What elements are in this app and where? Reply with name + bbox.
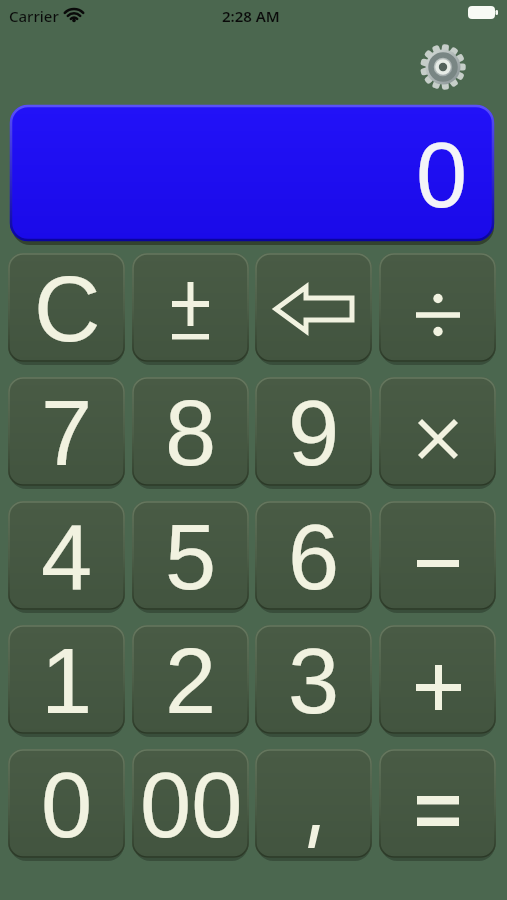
staticText: Carrier — [9, 6, 59, 26]
button[interactable]: 6 — [255, 501, 373, 613]
staticText: 0 — [416, 124, 468, 227]
staticText: 4 — [41, 506, 93, 609]
staticText: 0 — [41, 754, 93, 857]
button[interactable] — [255, 749, 373, 861]
button[interactable]: 7 — [8, 377, 126, 489]
staticText: 1 — [41, 630, 93, 733]
button[interactable]: 2 — [132, 625, 250, 737]
staticText: 5 — [165, 506, 217, 609]
button[interactable] — [379, 377, 497, 489]
button[interactable]: 4 — [8, 501, 126, 613]
staticText: 9 — [288, 382, 340, 485]
button[interactable]: 5 — [132, 501, 250, 613]
button[interactable] — [421, 45, 465, 89]
button[interactable]: 1 — [8, 625, 126, 737]
button[interactable] — [255, 253, 373, 365]
button[interactable]: 0 — [8, 749, 126, 861]
staticText: C — [34, 258, 101, 361]
button[interactable] — [379, 625, 497, 737]
button[interactable] — [379, 749, 497, 861]
staticText: 00 — [140, 754, 243, 857]
staticText: 2 — [165, 630, 217, 733]
button[interactable] — [379, 253, 497, 365]
staticText: 6 — [288, 506, 340, 609]
button[interactable]: 8 — [132, 377, 250, 489]
staticText: 2:28 AM — [222, 6, 280, 26]
button[interactable] — [132, 253, 250, 365]
button[interactable]: 9 — [255, 377, 373, 489]
button[interactable]: 00 — [132, 749, 250, 861]
button[interactable]: C — [8, 253, 126, 365]
button[interactable]: 3 — [255, 625, 373, 737]
staticText: 8 — [165, 382, 217, 485]
button[interactable] — [379, 501, 497, 613]
staticText: 7 — [41, 382, 93, 485]
staticText: 3 — [288, 630, 340, 733]
